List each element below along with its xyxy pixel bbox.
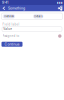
staticText: Assigned to [2,34,19,38]
staticText: ▮ ▮ ▮ [57,1,62,4]
staticText: Continue [4,42,19,46]
staticText: 9:41 [2,0,8,5]
button[interactable]: Share [57,5,63,11]
staticText: Field label [2,23,19,26]
staticText: Details [34,15,42,18]
staticText: Value [3,27,12,31]
staticText: Something [8,6,25,10]
button[interactable]: Overview [3,14,15,18]
button[interactable]: Details [33,14,43,18]
staticText: Overview [4,15,14,18]
button[interactable]: Back [1,5,7,11]
button[interactable]: Continue [1,42,22,47]
